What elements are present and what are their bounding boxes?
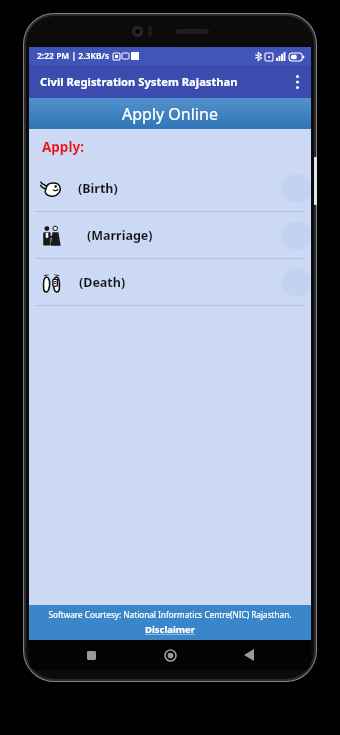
staticText: (Marriage)	[87, 227, 153, 244]
staticText: Software Courtesy: National Informatics …	[29, 609, 311, 620]
staticText: Apply Online	[122, 103, 218, 125]
button[interactable]: Disclaimer	[145, 623, 196, 636]
button[interactable]: Back	[232, 640, 266, 670]
staticText: 2:22 PM | 2.3KB/s	[37, 50, 110, 62]
button[interactable]: More options	[283, 65, 311, 98]
button[interactable]: (Birth)	[29, 165, 311, 211]
staticText: (Death)	[79, 274, 126, 291]
staticText: Civil Registration System Rajasthan	[40, 74, 238, 89]
button[interactable]: Recents	[74, 640, 108, 670]
staticText: Apply:	[42, 138, 84, 156]
button[interactable]: (Death)	[29, 259, 311, 305]
staticText: (Birth)	[78, 180, 118, 197]
button[interactable]: Home	[153, 640, 187, 670]
button[interactable]: (Marriage)	[29, 212, 311, 258]
